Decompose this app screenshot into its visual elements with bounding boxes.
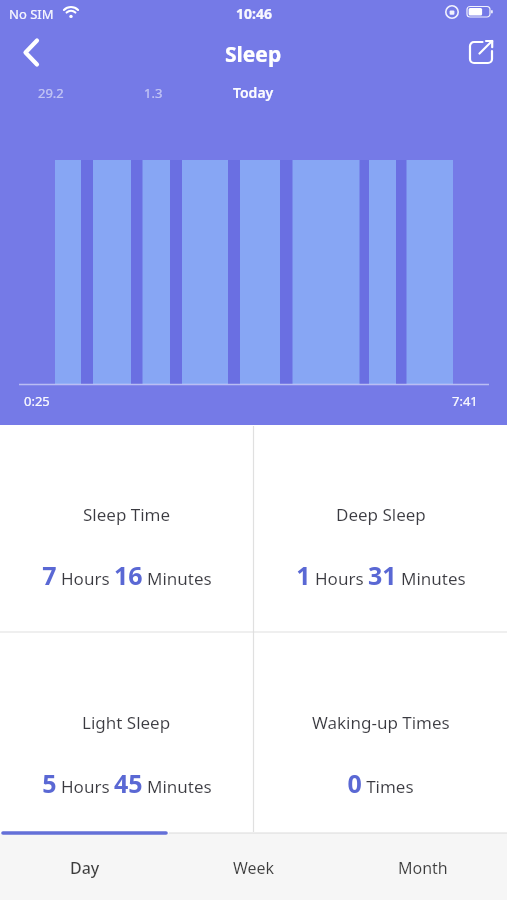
button[interactable]: Month <box>338 835 507 900</box>
staticText: 7:41 <box>452 392 478 410</box>
staticText: Light Sleep <box>82 711 171 734</box>
staticText: 0:25 <box>24 392 50 410</box>
staticText: Month <box>398 857 448 879</box>
staticText: 29.2 <box>38 84 64 102</box>
staticText: 1 Hours 31 Minutes <box>296 558 466 592</box>
staticText: Waking-up Times <box>312 711 450 734</box>
staticText: 10:46 <box>236 4 272 23</box>
staticText: No SIM <box>9 5 54 23</box>
staticText: 7 Hours 16 Minutes <box>42 558 212 592</box>
staticText: 1.3 <box>144 84 163 102</box>
button[interactable]: Light Sleep <box>0 633 253 840</box>
staticText: Day <box>70 857 100 879</box>
button[interactable]: Today <box>233 83 274 102</box>
staticText: 5 Hours 45 Minutes <box>42 766 212 800</box>
button[interactable]: Day <box>0 835 169 900</box>
button[interactable]: Sleep Time <box>0 425 253 632</box>
button[interactable] <box>462 34 500 70</box>
staticText: Week <box>233 857 275 879</box>
button[interactable]: Deep Sleep <box>254 425 507 632</box>
button[interactable]: Week <box>169 835 338 900</box>
button[interactable]: Waking-up Times <box>254 633 507 840</box>
staticText: Sleep Time <box>83 503 171 526</box>
button[interactable] <box>10 32 52 72</box>
staticText: Deep Sleep <box>336 503 426 526</box>
staticText: Sleep <box>225 40 282 69</box>
staticText: 0 Times <box>347 766 414 800</box>
